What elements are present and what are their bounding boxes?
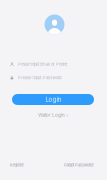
staticText: Please input Password [18, 75, 61, 80]
button[interactable]: Register [9, 163, 24, 167]
staticText: » [66, 112, 69, 118]
staticText: Forgot Password? [64, 163, 94, 167]
button[interactable]: Login [12, 94, 94, 105]
button[interactable]: Forgot Password? [64, 163, 94, 167]
staticText: Register [9, 163, 24, 167]
button[interactable]: Visitor Login [0, 111, 107, 118]
staticText: Visitor Login [38, 112, 65, 118]
staticText: Login [45, 96, 60, 103]
staticText: Please input Email or Phone [18, 62, 67, 67]
